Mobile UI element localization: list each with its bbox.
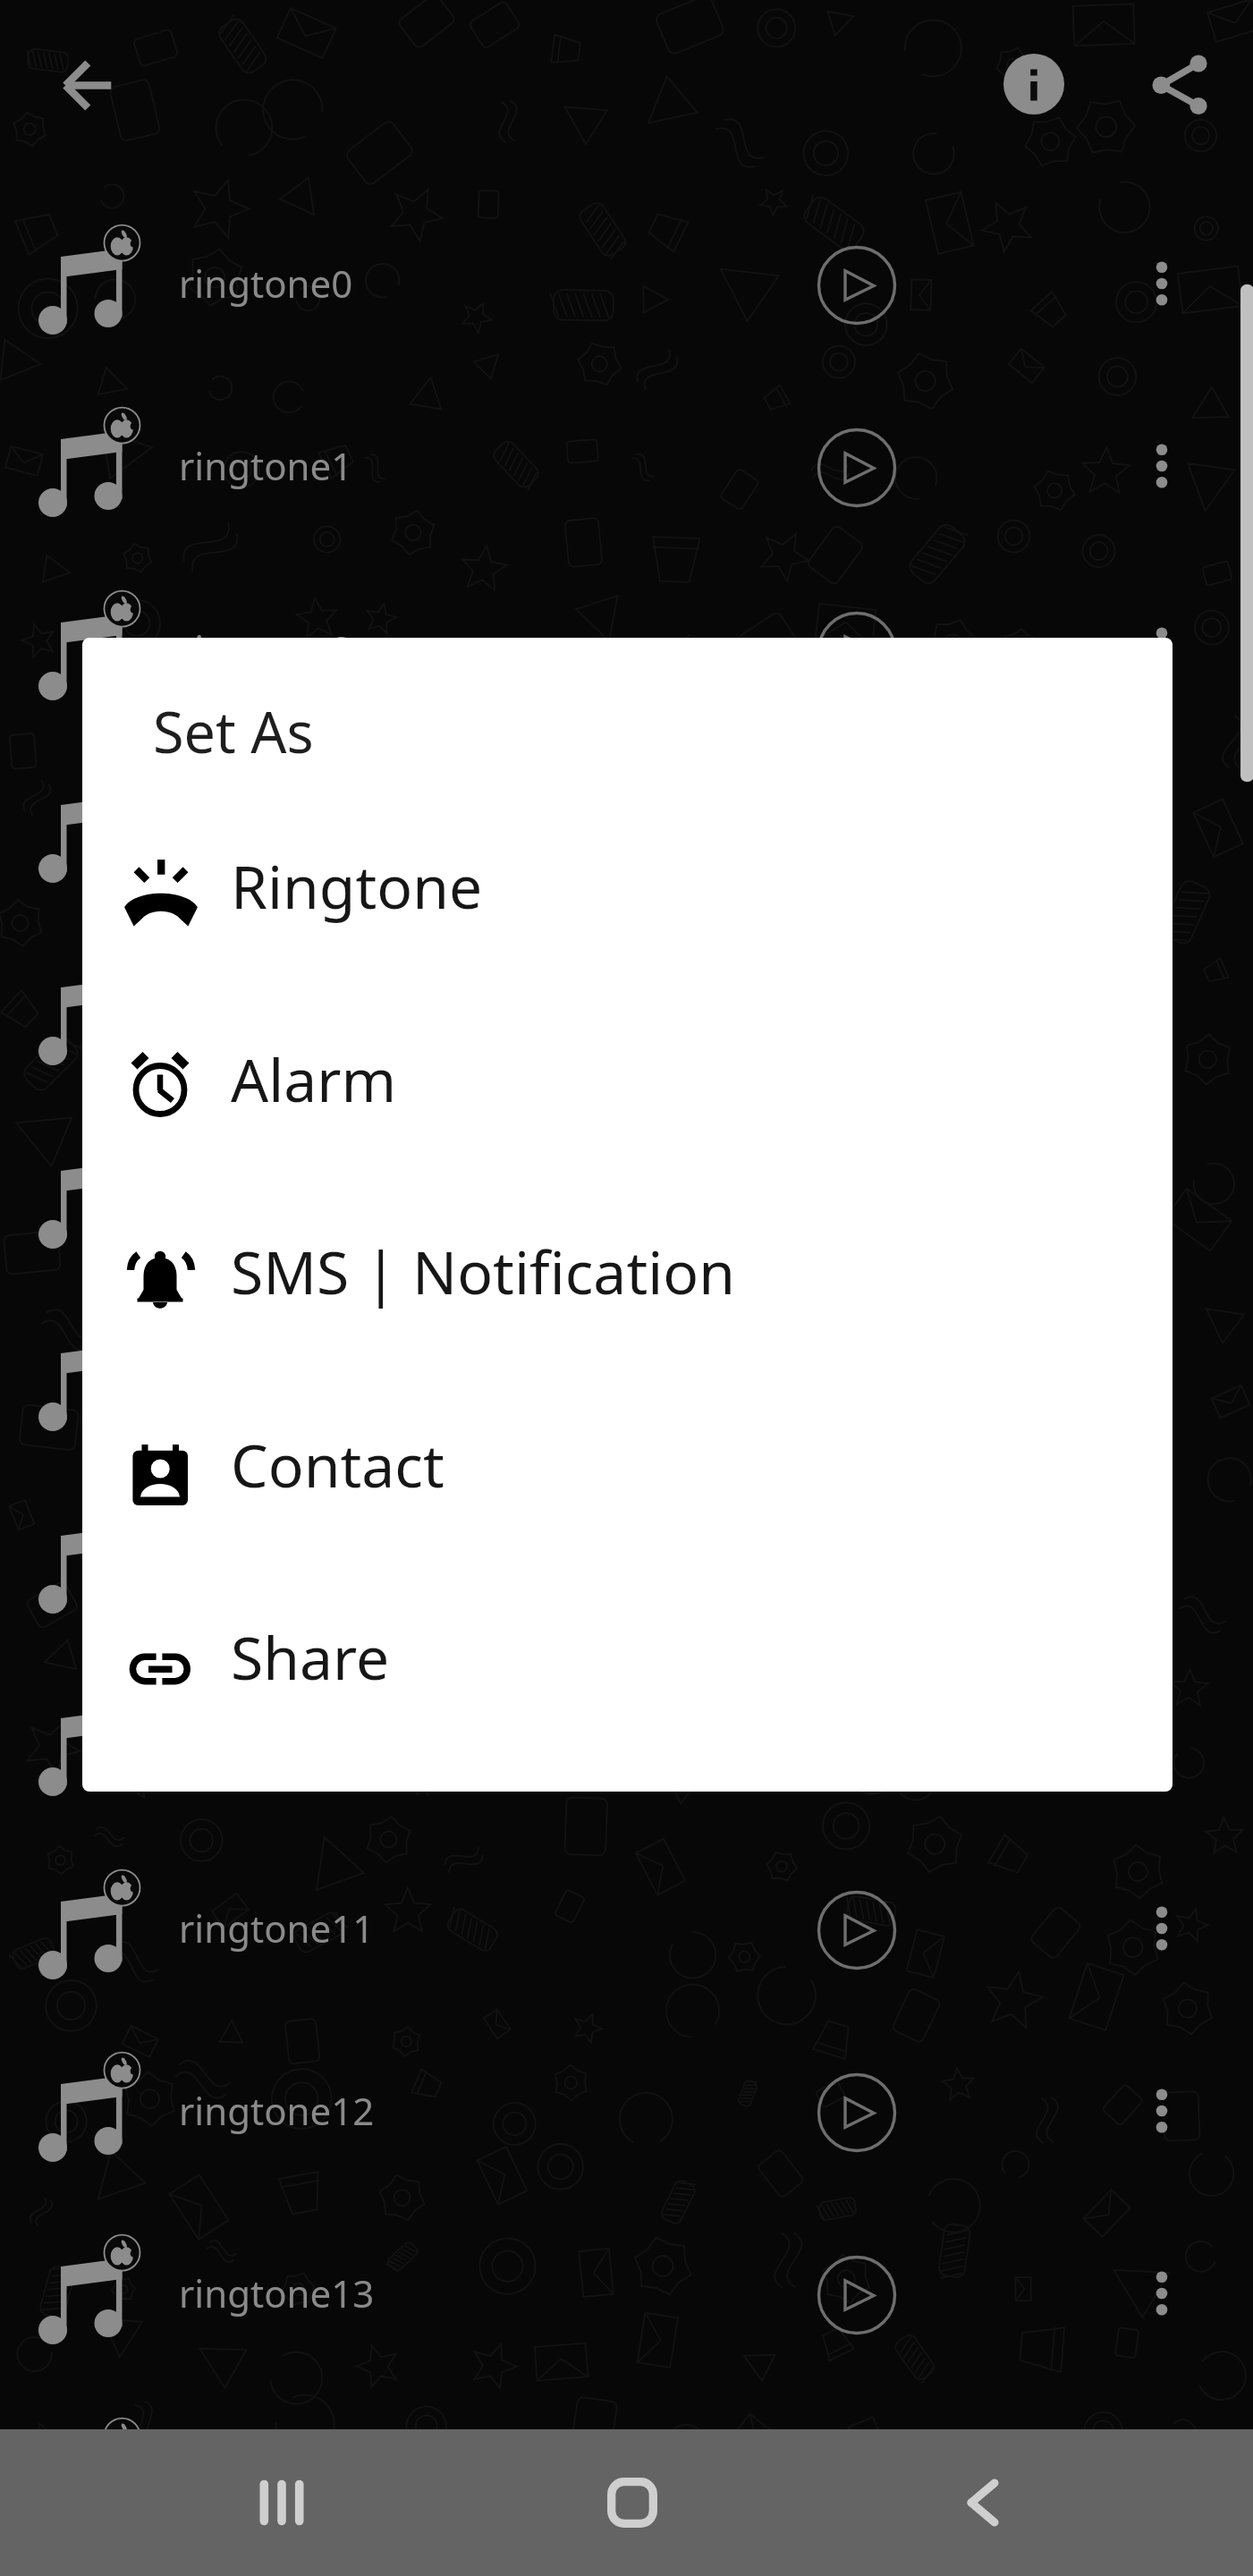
button[interactable]: Play [803, 232, 910, 339]
button[interactable]: Play [803, 414, 910, 521]
staticText: Share [231, 1616, 390, 1697]
button[interactable]: ringtone13 [0, 2204, 1253, 2386]
button[interactable]: Navigate back [931, 2453, 1029, 2552]
staticText: ringtone12 [179, 2085, 375, 2136]
button[interactable]: Share [82, 1568, 1173, 1760]
button[interactable]: ringtone2 [0, 560, 1253, 742]
button[interactable]: Recents [233, 2453, 331, 2552]
button[interactable]: ringtone3 [0, 742, 1253, 925]
staticText: ringtone11 [179, 1902, 375, 1953]
button[interactable]: ringtone0 [0, 194, 1253, 377]
button[interactable]: More options [1113, 1513, 1211, 1612]
button[interactable]: Back [36, 34, 138, 136]
button[interactable]: Info [983, 33, 1085, 135]
button[interactable]: ringtone7 [0, 1473, 1253, 1656]
button[interactable]: SMS | Notification [82, 1182, 1173, 1375]
button[interactable]: More options [1113, 2062, 1211, 2160]
button[interactable]: ringtone4 [0, 925, 1253, 1107]
staticText: Contact [231, 1424, 444, 1504]
staticText: ringtone13 [179, 2267, 375, 2318]
staticText: Ringtone [231, 845, 483, 926]
button[interactable]: More options [1113, 1148, 1211, 1247]
button[interactable]: More options [1113, 965, 1211, 1063]
button[interactable]: ringtone11 [0, 1839, 1253, 2021]
staticText: SMS | Notification [231, 1231, 735, 1311]
staticText: ringtone2 [179, 623, 353, 674]
button[interactable]: Play [803, 597, 910, 705]
button[interactable]: ringtone8 [0, 1656, 1253, 1838]
button[interactable]: More options [1113, 417, 1211, 515]
button[interactable]: ringtone12 [0, 2021, 1253, 2204]
button[interactable]: Play [803, 1693, 910, 1801]
button[interactable]: More options [1113, 1696, 1211, 1794]
button[interactable]: ringtone5 [0, 1108, 1253, 1291]
button[interactable]: ringtone6 [0, 1291, 1253, 1473]
button[interactable]: More options [1113, 1879, 1211, 1978]
button[interactable]: ringtone14 [0, 2387, 1253, 2570]
button[interactable]: More options [1113, 234, 1211, 333]
button[interactable]: Share [1129, 34, 1231, 136]
button[interactable]: More options [1113, 2244, 1211, 2343]
button[interactable]: More options [1113, 1331, 1211, 1429]
button[interactable]: More options [1113, 783, 1211, 881]
button[interactable]: Contact [82, 1376, 1173, 1568]
staticText: ringtone1 [179, 440, 353, 491]
button[interactable]: Alarm [82, 990, 1173, 1182]
button[interactable]: Play [803, 1877, 910, 1984]
staticText: Alarm [231, 1038, 397, 1119]
button[interactable]: Home [583, 2453, 682, 2552]
button[interactable]: More options [1113, 2428, 1211, 2526]
button[interactable]: Play [803, 2425, 910, 2532]
button[interactable]: More options [1113, 600, 1211, 699]
button[interactable]: Play [803, 2059, 910, 2166]
staticText: Set As [153, 693, 314, 770]
staticText: ringtone0 [179, 258, 353, 309]
staticText: ringtone14 [179, 2451, 375, 2502]
button[interactable]: Play [803, 2241, 910, 2349]
button[interactable]: ringtone1 [0, 377, 1253, 559]
button[interactable]: Ringtone [82, 797, 1173, 989]
